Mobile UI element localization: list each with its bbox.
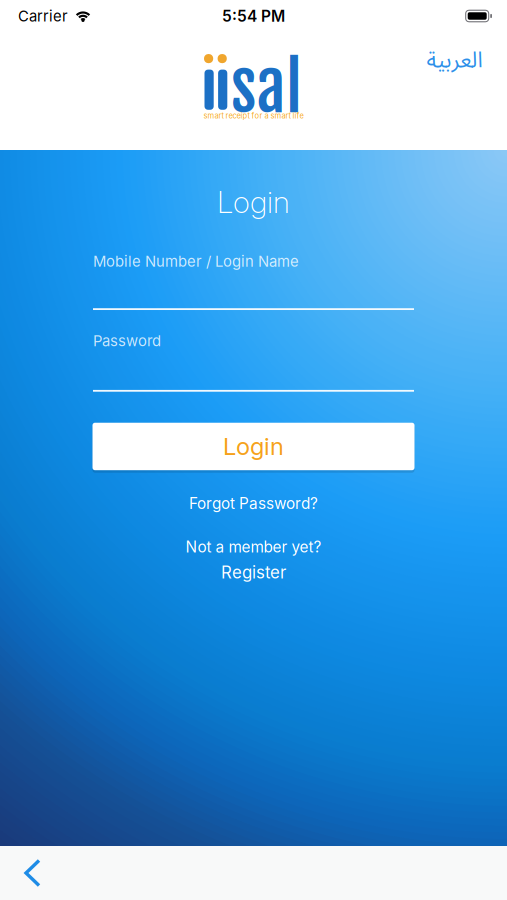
staticText: Not a member yet? <box>185 538 321 556</box>
staticText: Forgot Password? <box>189 494 318 513</box>
staticText: Password <box>93 332 161 350</box>
staticText: smart receipt for a smart life <box>203 111 303 120</box>
staticText: Login <box>223 432 284 461</box>
staticText: 5:54 PM <box>222 7 285 25</box>
button[interactable]: Login <box>92 423 414 470</box>
staticText: Login <box>217 184 290 220</box>
staticText: العربية <box>426 44 482 74</box>
staticText: Carrier <box>18 7 68 25</box>
staticText: sal <box>231 48 302 128</box>
button[interactable]: Register <box>221 562 286 583</box>
button[interactable]: العربية <box>426 44 482 74</box>
staticText: Mobile Number / Login Name <box>93 252 299 270</box>
button[interactable]: Back <box>0 846 44 899</box>
button[interactable]: Forgot Password? <box>189 494 318 513</box>
staticText: Register <box>221 562 286 583</box>
